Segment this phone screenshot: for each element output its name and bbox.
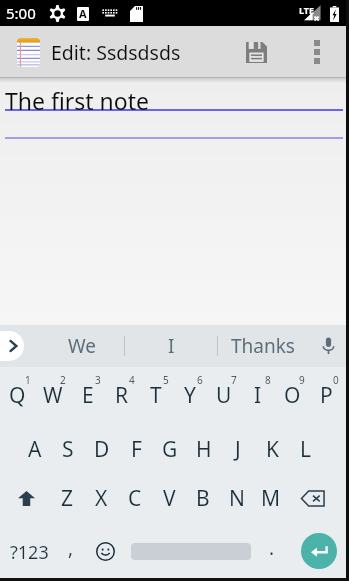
- staticText: We: [68, 333, 97, 359]
- staticText: 0: [333, 373, 339, 387]
- button[interactable]: I: [125, 325, 217, 367]
- button[interactable]: We: [40, 325, 124, 367]
- staticText: T: [150, 381, 162, 410]
- button[interactable]: V: [152, 472, 186, 524]
- staticText: W: [43, 381, 63, 410]
- button[interactable]: 2: [35, 367, 70, 420]
- staticText: L: [300, 435, 312, 464]
- staticText: 5:00: [6, 3, 36, 23]
- staticText: I: [254, 381, 262, 410]
- staticText: Edit: Ssdsdsds: [51, 39, 181, 66]
- staticText: Thanks: [231, 333, 295, 359]
- button[interactable]: Enter: [290, 524, 347, 578]
- staticText: F: [131, 435, 142, 464]
- staticText: X: [95, 484, 108, 513]
- staticText: Z: [61, 484, 74, 513]
- staticText: LTE: [299, 4, 315, 16]
- button[interactable]: N: [220, 472, 254, 524]
- button[interactable]: K: [255, 420, 289, 472]
- button[interactable]: C: [118, 472, 152, 524]
- staticText: I: [168, 333, 175, 359]
- staticText: 4: [129, 373, 135, 387]
- staticText: 8: [265, 373, 271, 387]
- staticText: P: [320, 381, 333, 410]
- staticText: M: [261, 484, 281, 513]
- button[interactable]: L: [289, 420, 323, 472]
- staticText: V: [163, 484, 176, 513]
- button[interactable]: 0: [309, 367, 343, 420]
- button[interactable]: ,: [58, 524, 83, 578]
- staticText: K: [266, 435, 279, 464]
- staticText: C: [128, 484, 142, 513]
- button[interactable]: H: [187, 420, 221, 472]
- button[interactable]: Thanks: [218, 325, 308, 367]
- staticText: ?123: [10, 540, 49, 565]
- button[interactable]: 3: [70, 367, 105, 420]
- button[interactable]: G: [153, 420, 187, 472]
- staticText: E: [82, 381, 94, 410]
- staticText: 6: [197, 373, 203, 387]
- staticText: A: [79, 7, 87, 20]
- staticText: H: [196, 435, 212, 464]
- button[interactable]: Space: [127, 524, 254, 578]
- staticText: 3: [95, 373, 101, 387]
- button[interactable]: X: [84, 472, 118, 524]
- button[interactable]: F: [119, 420, 153, 472]
- staticText: O: [284, 381, 301, 410]
- button[interactable]: More options: [299, 26, 335, 78]
- staticText: 1: [25, 373, 31, 387]
- staticText: R: [115, 381, 129, 410]
- button[interactable]: 6: [173, 367, 207, 420]
- button[interactable]: Emoji: [83, 524, 127, 578]
- staticText: The first note: [5, 85, 150, 116]
- button[interactable]: S: [51, 420, 85, 472]
- button[interactable]: ?123: [0, 524, 58, 578]
- staticText: A: [28, 435, 42, 464]
- button[interactable]: Z: [51, 472, 84, 524]
- button[interactable]: A: [18, 420, 51, 472]
- button[interactable]: 7: [207, 367, 241, 420]
- button[interactable]: Expand suggestions: [0, 331, 24, 361]
- button[interactable]: 1: [0, 367, 35, 420]
- button[interactable]: Shift: [2, 472, 51, 524]
- staticText: 9: [299, 373, 305, 387]
- staticText: 5: [163, 373, 169, 387]
- staticText: G: [162, 435, 178, 464]
- button[interactable]: 5: [139, 367, 173, 420]
- button[interactable]: 8: [241, 367, 275, 420]
- staticText: B: [196, 484, 210, 513]
- button[interactable]: 9: [275, 367, 309, 420]
- button[interactable]: Save: [233, 26, 279, 78]
- staticText: 7: [231, 373, 237, 387]
- staticText: S: [62, 435, 74, 464]
- staticText: J: [235, 435, 241, 464]
- staticText: U: [216, 381, 232, 410]
- staticText: N: [229, 484, 245, 513]
- button[interactable]: M: [254, 472, 288, 524]
- staticText: ,: [68, 535, 74, 561]
- button[interactable]: J: [221, 420, 255, 472]
- staticText: .: [269, 535, 275, 561]
- staticText: Y: [184, 381, 196, 410]
- button[interactable]: B: [186, 472, 220, 524]
- button[interactable]: D: [85, 420, 119, 472]
- button[interactable]: Backspace: [288, 472, 338, 524]
- button[interactable]: 4: [105, 367, 139, 420]
- staticText: 2: [60, 373, 66, 387]
- button[interactable]: .: [254, 524, 290, 578]
- staticText: D: [94, 435, 110, 464]
- staticText: Q: [9, 381, 26, 410]
- button[interactable]: Voice input: [308, 325, 349, 367]
